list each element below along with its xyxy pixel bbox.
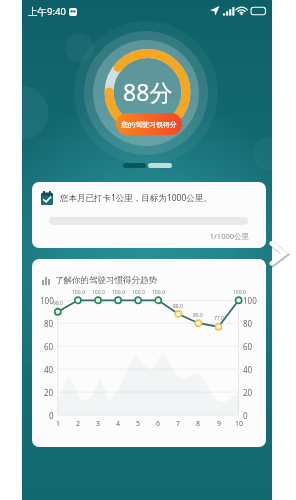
- button[interactable]: 您的驾驶习惯得分: [116, 113, 182, 135]
- staticText: 40: [44, 364, 54, 375]
- staticText: 7: [176, 419, 181, 429]
- staticText: 60: [243, 341, 253, 352]
- staticText: 您的驾驶习惯得分: [121, 120, 177, 129]
- staticText: 100: [40, 295, 54, 306]
- staticText: 100.0: [132, 289, 145, 296]
- staticText: 90.0: [53, 300, 63, 307]
- staticText: 5: [136, 419, 141, 429]
- staticText: 3: [96, 419, 101, 429]
- staticText: 100.0: [233, 289, 246, 296]
- staticText: 1/1000公里: [32, 231, 249, 241]
- staticText: 100.0: [72, 289, 85, 296]
- staticText: 20: [243, 387, 253, 398]
- staticText: 100.0: [152, 289, 165, 296]
- staticText: 1: [56, 419, 61, 429]
- staticText: 您本月已打卡1公里，目标为1000公里。: [60, 192, 212, 204]
- staticText: 88.0: [173, 303, 183, 310]
- staticText: 80: [44, 318, 54, 329]
- staticText: 100.0: [92, 289, 105, 296]
- staticText: 60: [44, 341, 54, 352]
- staticText: 10: [235, 419, 244, 429]
- staticText: 100: [243, 295, 257, 306]
- staticText: 40: [243, 364, 253, 375]
- staticText: 了解你的驾驶习惯得分趋势: [55, 275, 157, 286]
- staticText: 上午9:40: [28, 5, 66, 18]
- button[interactable]: 了解你的驾驶习惯得分趋势: [32, 259, 266, 447]
- staticText: 8: [196, 419, 201, 429]
- staticText: 9: [217, 419, 222, 429]
- staticText: 2: [76, 419, 81, 429]
- other: Next page: [269, 240, 291, 268]
- staticText: 80: [243, 318, 253, 329]
- staticText: 0: [243, 410, 248, 421]
- staticText: 0: [49, 410, 54, 421]
- staticText: 77.0: [214, 315, 224, 322]
- staticText: 80.0: [193, 312, 203, 319]
- staticText: 4: [116, 419, 121, 429]
- staticText: 100.0: [112, 289, 125, 296]
- staticText: 88分: [123, 76, 173, 107]
- staticText: 20: [44, 387, 54, 398]
- staticText: 6: [156, 419, 161, 429]
- button[interactable]: 您本月已打卡1公里，目标为1000公里。: [32, 182, 266, 248]
